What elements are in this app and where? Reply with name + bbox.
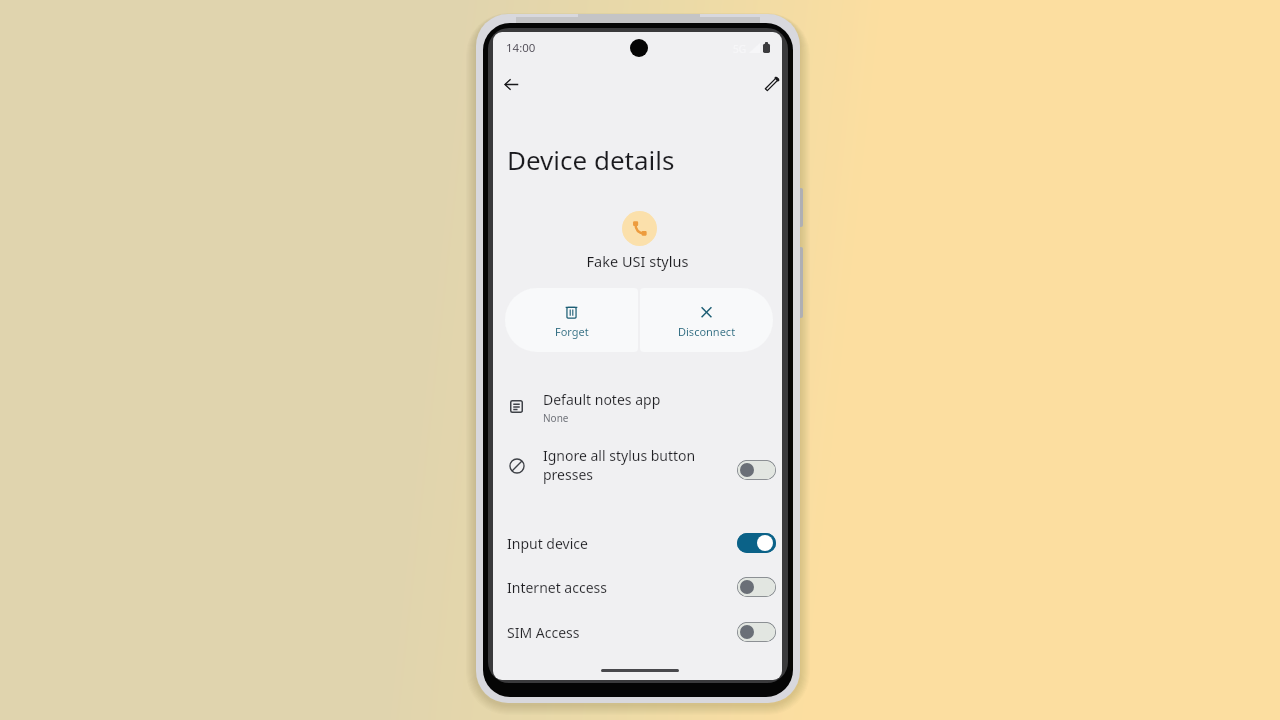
button[interactable]: Input device — [493, 521, 782, 565]
staticText: 14:00 — [506, 40, 536, 56]
button[interactable]: SIM Access — [737, 622, 776, 642]
button[interactable]: Disconnect — [640, 288, 773, 352]
button[interactable]: Forget — [505, 288, 638, 352]
staticText: SIM Access — [507, 623, 580, 642]
staticText: Internet access — [507, 578, 607, 597]
button[interactable]: Input device — [737, 533, 776, 553]
staticText: Ignore all stylus button presses — [543, 446, 696, 484]
staticText: Input device — [507, 534, 588, 553]
button[interactable]: Internet access — [737, 577, 776, 597]
button[interactable]: Ignore all stylus button presses — [737, 460, 776, 480]
staticText: Device details — [507, 142, 675, 177]
button[interactable]: Back — [493, 64, 531, 104]
staticText: Fake USI stylus — [493, 251, 782, 271]
staticText: Disconnect — [678, 324, 736, 339]
button[interactable]: SIM Access — [493, 610, 782, 654]
button[interactable]: Default notes app — [493, 363, 782, 425]
button[interactable]: Edit — [752, 64, 782, 104]
staticText: Default notes app — [543, 390, 661, 409]
button[interactable]: Ignore all stylus button presses — [493, 435, 782, 497]
staticText: Forget — [555, 324, 589, 339]
staticText: None — [543, 411, 569, 425]
button[interactable]: Internet access — [493, 565, 782, 609]
